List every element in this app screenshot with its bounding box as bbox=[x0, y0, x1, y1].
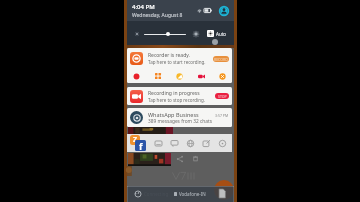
staticText: Recording in progress bbox=[148, 90, 200, 97]
button[interactable]: Account bbox=[219, 6, 229, 16]
staticText: 3:57 PM bbox=[215, 113, 229, 118]
button[interactable]: Recording in progress bbox=[127, 87, 232, 105]
staticText: Tap here to stop recording. bbox=[148, 97, 205, 103]
button[interactable]: Edit bbox=[200, 135, 213, 151]
button[interactable]: Capture bbox=[173, 70, 186, 83]
staticText: STOP bbox=[218, 94, 227, 99]
staticText: f bbox=[139, 140, 143, 151]
button[interactable]: Create bbox=[214, 180, 234, 200]
button[interactable]: Messages bbox=[168, 135, 181, 151]
staticText: WhatsApp Business bbox=[148, 111, 199, 118]
button[interactable]: STOP bbox=[215, 93, 229, 99]
staticText: Z bbox=[133, 135, 138, 145]
button[interactable]: Screen apps bbox=[152, 70, 165, 83]
staticText: Vodafone-IN bbox=[179, 191, 206, 197]
button[interactable]: Close bbox=[216, 70, 229, 83]
button[interactable]: WhatsApp Business bbox=[127, 108, 232, 127]
button[interactable]: Gallery bbox=[152, 135, 165, 151]
button[interactable]: Auto bbox=[207, 30, 227, 37]
staticText: 389 messages from 32 chats bbox=[148, 118, 213, 125]
button[interactable]: More options bbox=[216, 135, 229, 151]
staticText: Recorder is ready. bbox=[148, 52, 190, 59]
button[interactable]: Browser bbox=[184, 135, 197, 151]
button[interactable]: RECORD bbox=[213, 56, 229, 62]
staticText: Wednesday, August 8 bbox=[132, 12, 183, 19]
staticText: Tap here to start recording. bbox=[148, 59, 206, 65]
staticText: Auto bbox=[216, 31, 227, 37]
button[interactable]: Record bbox=[130, 70, 143, 83]
button[interactable]: Video bbox=[195, 70, 208, 83]
staticText: RECORD bbox=[214, 57, 228, 62]
button[interactable]: Recorder is ready. bbox=[127, 48, 232, 83]
button[interactable]: Share to apps bbox=[128, 134, 148, 152]
staticText: 4:04 PM bbox=[132, 3, 155, 11]
